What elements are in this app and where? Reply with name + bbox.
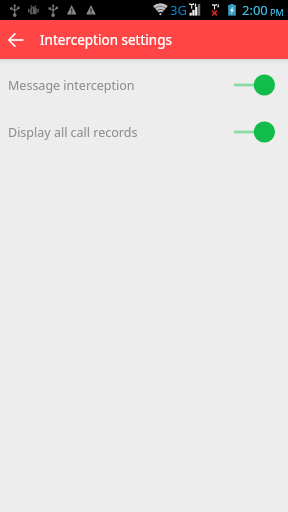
button[interactable]: Back — [1, 25, 31, 55]
staticText: 2:00 — [242, 1, 268, 19]
staticText: Interception settings — [40, 31, 172, 49]
staticText: 3G — [170, 1, 187, 19]
staticText: PM — [270, 6, 284, 18]
staticText: Message interception — [8, 77, 135, 94]
button[interactable]: Message interception — [0, 62, 288, 108]
button[interactable]: Display all call records — [0, 109, 288, 155]
staticText: Display all call records — [8, 124, 138, 141]
